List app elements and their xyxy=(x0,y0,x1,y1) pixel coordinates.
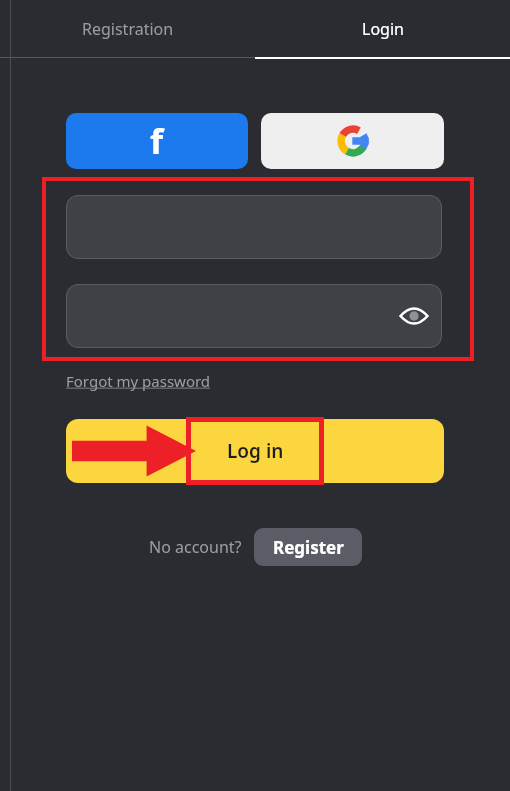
button[interactable]: Show password xyxy=(396,298,432,334)
button[interactable]: Login xyxy=(255,0,510,57)
button[interactable]: Registration xyxy=(0,0,255,57)
button[interactable]: Register xyxy=(254,528,362,566)
staticText: Forgot my password xyxy=(66,371,211,391)
button[interactable]: Sign in with Facebook xyxy=(66,113,248,169)
staticText: f xyxy=(150,118,164,164)
staticText: Registration xyxy=(82,18,174,40)
button[interactable]: Password field xyxy=(66,284,442,348)
staticText: Register xyxy=(273,536,344,559)
button[interactable]: Log in xyxy=(66,419,444,483)
button[interactable]: Forgot my password xyxy=(66,371,211,391)
button[interactable]: Sign in with Google xyxy=(261,113,444,169)
staticText: Login xyxy=(362,18,404,40)
button[interactable]: Email field xyxy=(66,195,442,259)
staticText: Log in xyxy=(227,438,284,464)
staticText: No account? xyxy=(149,536,242,558)
